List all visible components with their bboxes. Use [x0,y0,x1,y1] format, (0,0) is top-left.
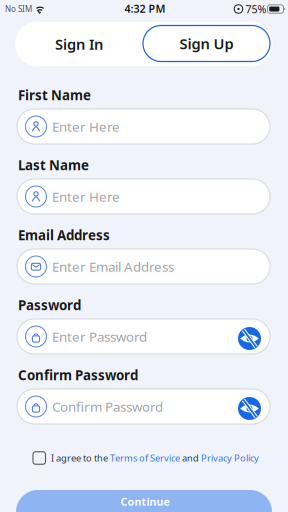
staticText: Last Name [18,156,89,174]
staticText: Confirm Password [52,398,163,415]
staticText: 4:32 PM [124,1,165,16]
staticText: Sign In [55,34,103,54]
staticText: No SIM [5,4,32,14]
staticText: Enter Here [52,188,120,205]
staticText: and [180,452,201,464]
staticText: Confirm Password [18,366,138,384]
staticText: Password [18,296,81,314]
staticText: Continue [120,494,169,509]
staticText: Privacy Policy [201,452,259,464]
staticText: Sign Up [179,34,233,53]
staticText: Enter Email Address [52,258,174,275]
staticText: I agree to the [51,452,110,464]
staticText: Email Address [18,226,110,244]
staticText: Enter Password [52,328,147,345]
staticText: Terms of Service [110,452,180,464]
staticText: 75% [245,2,266,16]
staticText: First Name [18,86,91,104]
staticText: Enter Here [52,118,120,135]
